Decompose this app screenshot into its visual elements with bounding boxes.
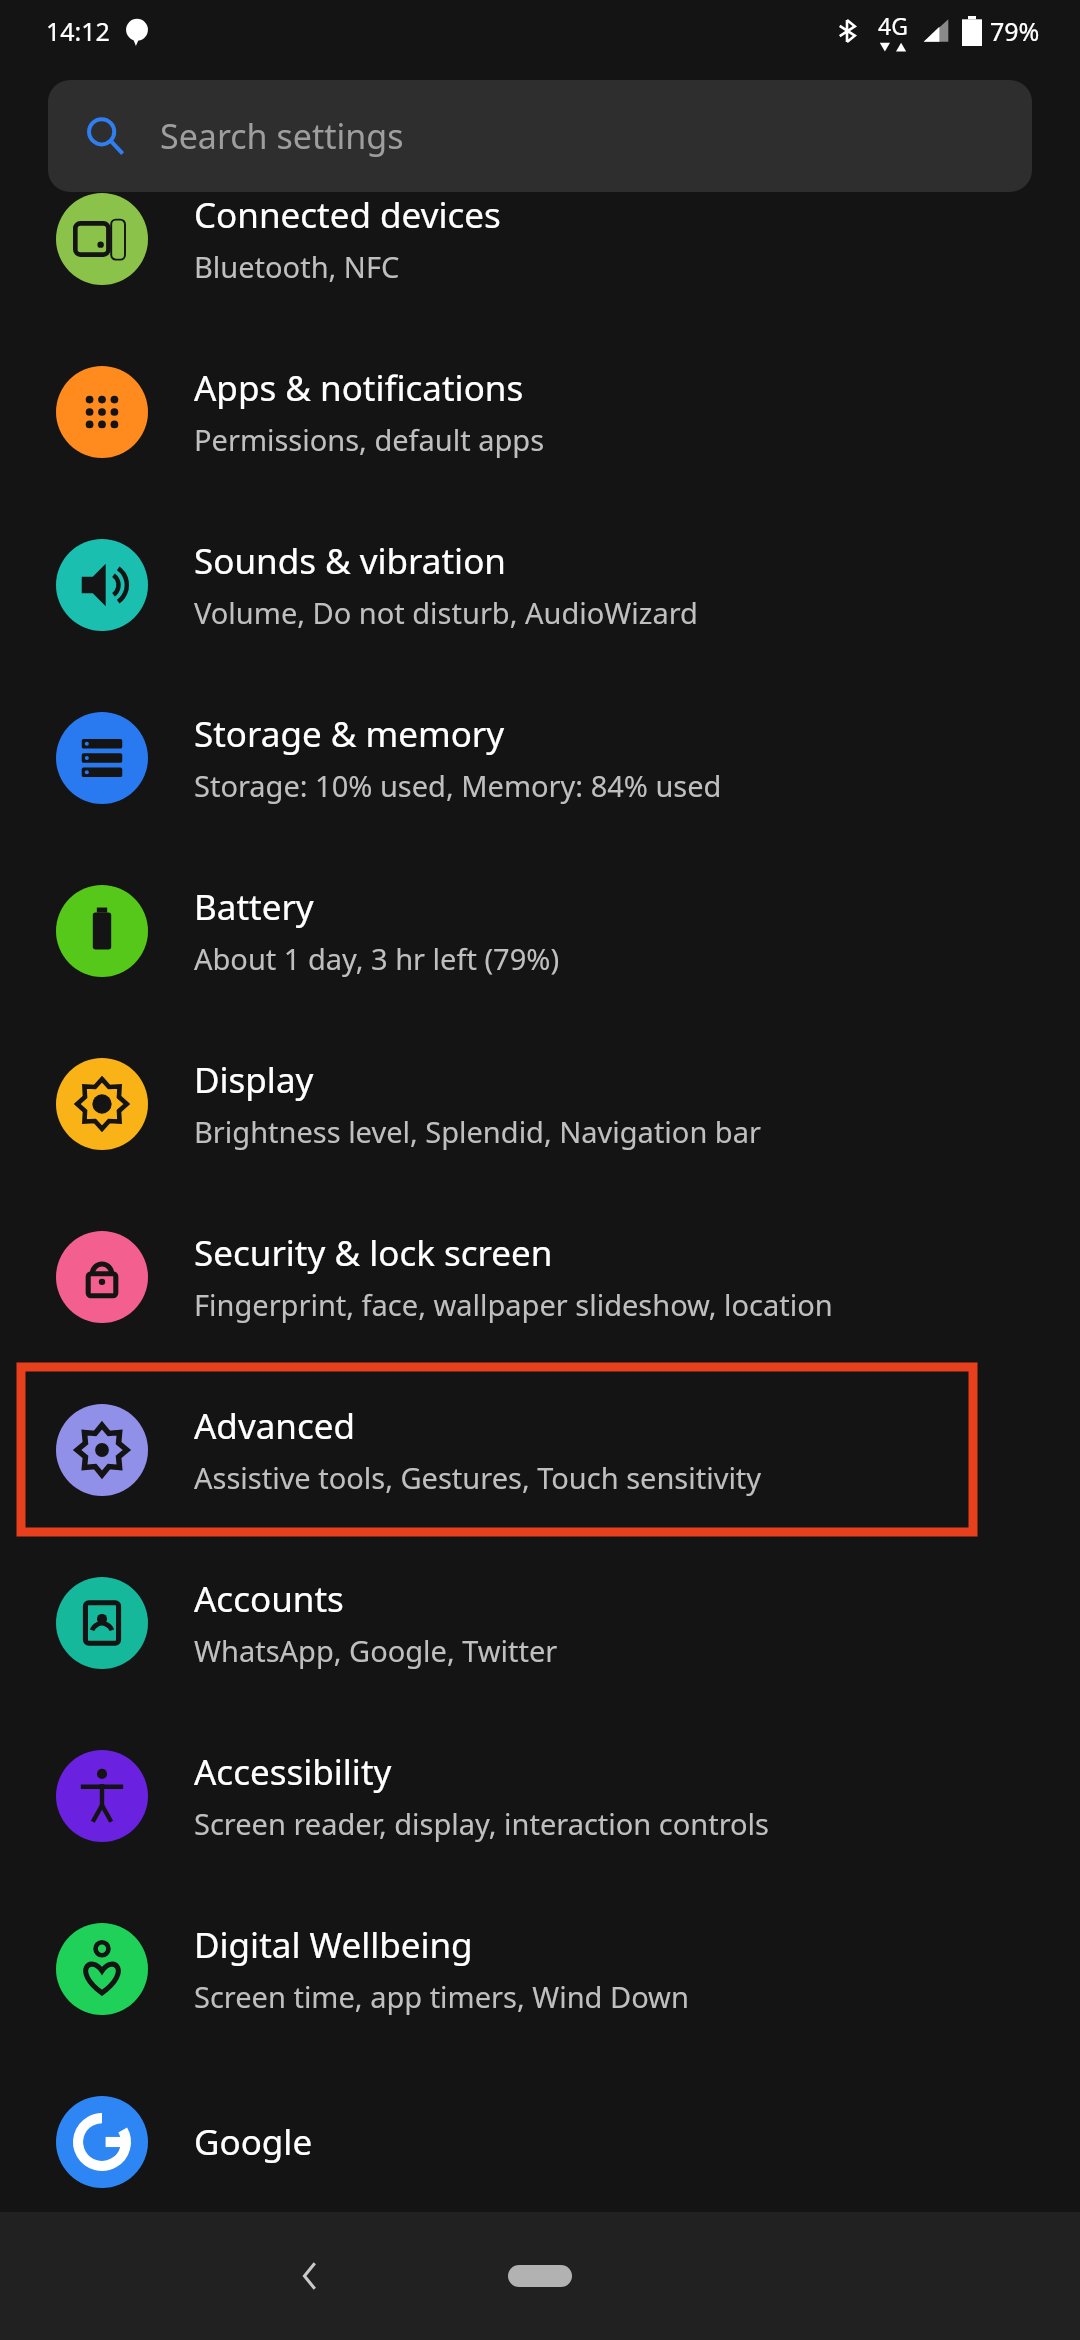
staticText: Storage: 10% used, Memory: 84% used [194, 766, 722, 805]
button[interactable]: Advanced [0, 1363, 1080, 1536]
button[interactable]: Connected devices [0, 152, 1080, 325]
staticText: Brightness level, Splendid, Navigation b… [194, 1112, 761, 1151]
button[interactable]: Accounts [0, 1536, 1080, 1709]
staticText: Apps & notifications [194, 364, 524, 412]
staticText: Storage & memory [194, 710, 505, 758]
button[interactable]: Display [0, 1017, 1080, 1190]
button[interactable]: Sounds & vibration [0, 498, 1080, 671]
staticText: Fingerprint, face, wallpaper slideshow, … [194, 1285, 833, 1324]
staticText: 14:12 [46, 14, 110, 48]
button[interactable]: Home [480, 2241, 600, 2311]
staticText: Digital Wellbeing [194, 1921, 473, 1969]
staticText: 4G [878, 10, 908, 41]
staticText: Battery [194, 883, 314, 931]
staticText: About 1 day, 3 hr left (79%) [194, 939, 560, 978]
staticText: Accounts [194, 1575, 344, 1623]
staticText: Screen time, app timers, Wind Down [194, 1977, 689, 2016]
button[interactable]: Search settings [48, 80, 1032, 192]
staticText: Google [194, 2118, 313, 2166]
staticText: Security & lock screen [194, 1229, 553, 1277]
button[interactable]: Storage & memory [0, 671, 1080, 844]
staticText: Advanced [194, 1402, 356, 1450]
staticText: Sounds & vibration [194, 537, 506, 585]
button[interactable]: Accessibility [0, 1709, 1080, 1882]
staticText: 79% [990, 14, 1040, 48]
button[interactable]: Back [272, 2238, 348, 2314]
staticText: Connected devices [194, 191, 501, 239]
button[interactable]: Battery [0, 844, 1080, 1017]
staticText: Bluetooth, NFC [194, 247, 400, 286]
staticText: Permissions, default apps [194, 420, 545, 459]
staticText: Assistive tools, Gestures, Touch sensiti… [194, 1458, 762, 1497]
button[interactable]: Apps & notifications [0, 325, 1080, 498]
staticText: WhatsApp, Google, Twitter [194, 1631, 558, 1670]
staticText: Accessibility [194, 1748, 392, 1796]
button[interactable]: Digital Wellbeing [0, 1882, 1080, 2055]
button[interactable]: Google [0, 2055, 1080, 2228]
staticText: Volume, Do not disturb, AudioWizard [194, 593, 698, 632]
staticText: Search settings [160, 113, 404, 159]
staticText: Display [194, 1056, 314, 1104]
staticText: Screen reader, display, interaction cont… [194, 1804, 769, 1843]
button[interactable]: Security & lock screen [0, 1190, 1080, 1363]
